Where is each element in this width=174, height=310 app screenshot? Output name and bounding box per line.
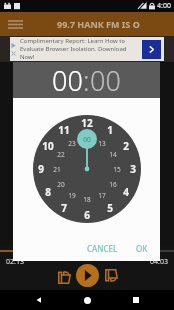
- button[interactable]: 23: [63, 134, 81, 152]
- button[interactable]: Open ad: [142, 40, 161, 59]
- button[interactable]: 2: [117, 137, 135, 155]
- button[interactable]: 17: [93, 186, 111, 204]
- button[interactable]: 5: [101, 199, 119, 217]
- button[interactable]: 19: [63, 186, 81, 204]
- button[interactable]: 16: [104, 175, 122, 193]
- button[interactable]: 15: [108, 160, 126, 178]
- button[interactable]: Thumbs down: [100, 265, 122, 287]
- staticText: 13: [98, 139, 106, 148]
- staticText: 04:03: [150, 257, 168, 267]
- button[interactable]: Recent apps: [126, 290, 146, 310]
- button[interactable]: 9: [32, 160, 50, 178]
- staticText: 16: [109, 180, 117, 189]
- button[interactable]: 14: [104, 145, 122, 163]
- button[interactable]: Home: [77, 290, 97, 310]
- button[interactable]: 00: [78, 130, 96, 148]
- staticText: 18: [83, 195, 91, 204]
- staticText: 2: [123, 139, 129, 153]
- staticText: 3: [130, 162, 136, 176]
- button[interactable]: 21: [48, 160, 66, 178]
- staticText: 17: [98, 191, 106, 200]
- staticText: 15: [113, 165, 121, 174]
- button[interactable]: 1: [101, 121, 119, 139]
- staticText: 1: [107, 123, 113, 137]
- staticText: OK: [136, 243, 148, 254]
- button[interactable]: CANCEL: [83, 240, 122, 257]
- staticText: Evaluate Browser Isolation. Download Now…: [20, 45, 142, 61]
- staticText: 4: [123, 185, 129, 199]
- button[interactable]: 6: [78, 206, 96, 224]
- staticText: CANCEL: [87, 243, 118, 254]
- staticText: 14: [109, 150, 117, 159]
- button[interactable]: 8: [39, 183, 57, 201]
- staticText: 6: [84, 208, 90, 222]
- staticText: 10: [42, 139, 54, 153]
- button[interactable]: 11: [55, 121, 73, 139]
- staticText: 5: [107, 201, 113, 215]
- button[interactable]: 3: [124, 160, 142, 178]
- staticText: 20: [57, 180, 65, 189]
- button[interactable]: 00: [52, 62, 83, 98]
- staticText: 12: [81, 116, 93, 130]
- button[interactable]: 22: [52, 145, 70, 163]
- button[interactable]: 13: [93, 134, 111, 152]
- staticText: 8: [45, 185, 51, 199]
- staticText: 7: [61, 201, 67, 215]
- staticText: 19: [68, 191, 76, 200]
- staticText: :: [83, 62, 90, 98]
- button[interactable]: 7: [55, 199, 73, 217]
- button[interactable]: Play: [76, 264, 99, 287]
- button[interactable]: 20: [52, 175, 70, 193]
- button[interactable]: Back: [29, 290, 49, 310]
- staticText: 02:13: [6, 257, 24, 267]
- button[interactable]: 12: [78, 114, 96, 132]
- button[interactable]: Open navigation menu: [4, 13, 26, 35]
- staticText: 99.7 HANK FM IS O: [57, 18, 140, 30]
- staticText: 4:00: [157, 1, 171, 11]
- staticText: 21: [53, 165, 61, 174]
- staticText: 9: [38, 162, 44, 176]
- staticText: 00: [83, 135, 91, 144]
- staticText: 23: [68, 139, 76, 148]
- button[interactable]: 10: [39, 137, 57, 155]
- button[interactable]: 4: [117, 183, 135, 201]
- button[interactable]: 00: [90, 62, 121, 98]
- staticText: Complimentary Report: Learn How to: [20, 37, 126, 45]
- button[interactable]: Thumbs up: [53, 265, 75, 287]
- button[interactable]: 18: [78, 190, 96, 208]
- button[interactable]: Complimentary Report: Learn How to: [10, 37, 164, 61]
- staticText: 22: [57, 150, 65, 159]
- staticText: 11: [58, 123, 70, 137]
- button[interactable]: OK: [132, 240, 152, 257]
